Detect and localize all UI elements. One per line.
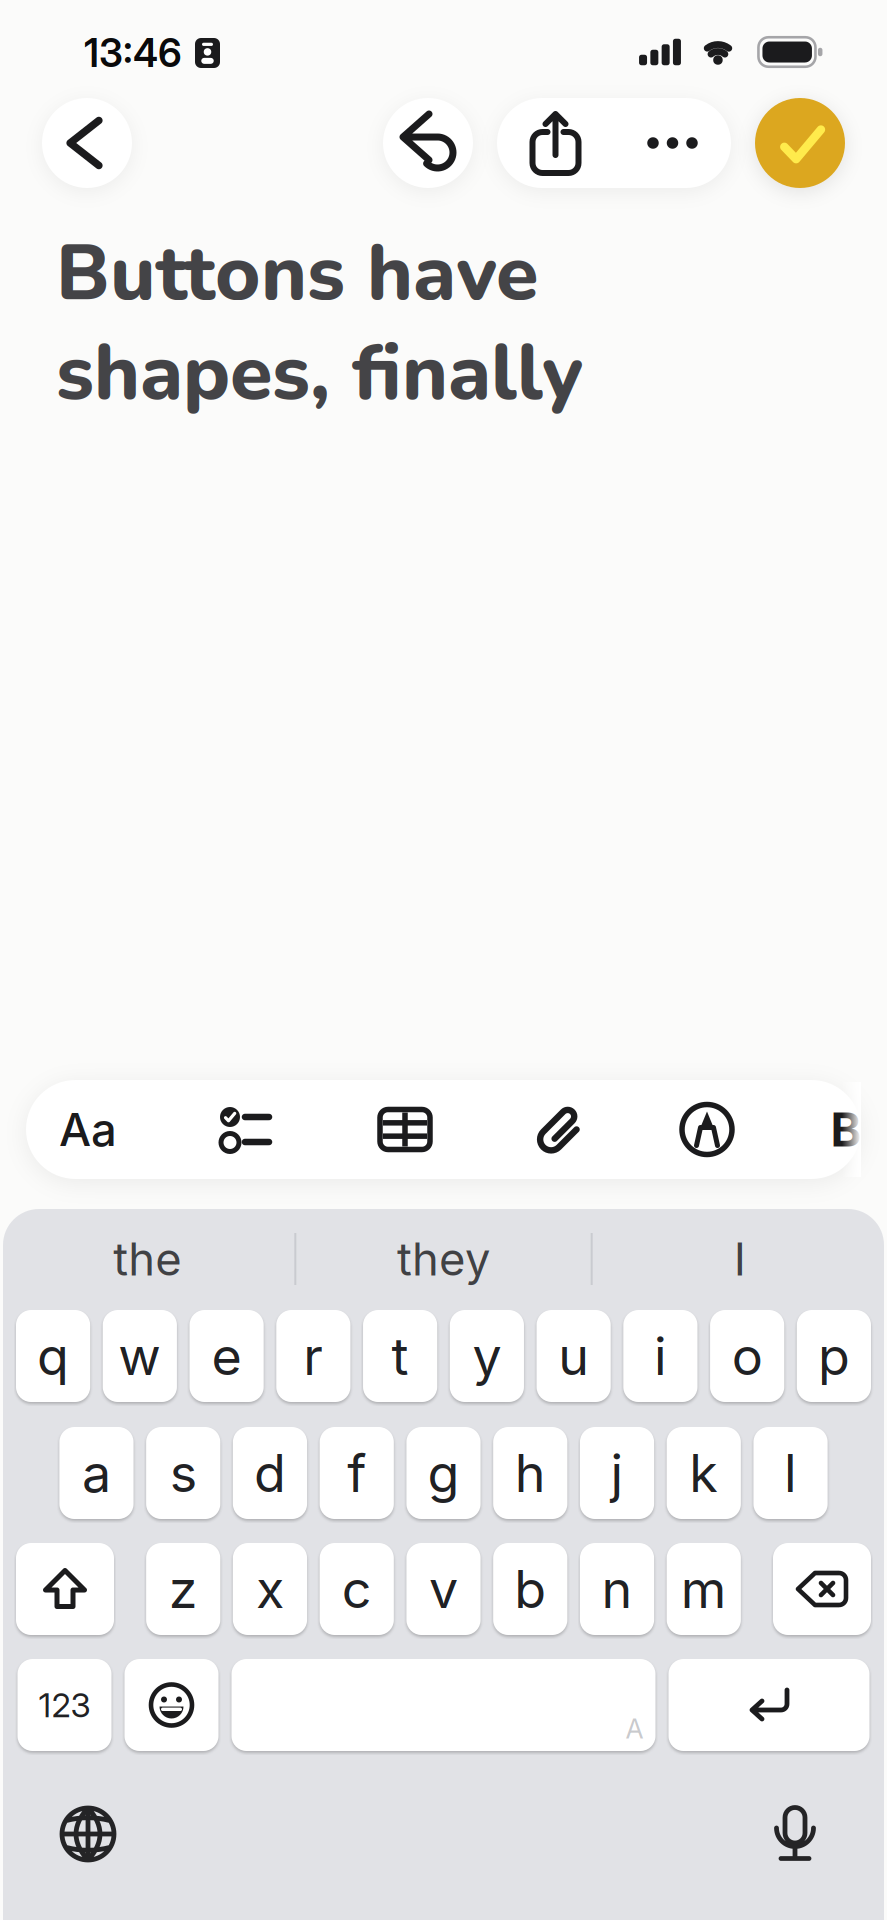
- staticText: w: [118, 1324, 161, 1387]
- button[interactable]: I: [593, 1232, 887, 1286]
- button[interactable]: u: [537, 1310, 611, 1402]
- staticText: l: [784, 1441, 797, 1504]
- button[interactable]: f: [320, 1427, 394, 1519]
- staticText: m: [681, 1557, 727, 1620]
- button[interactable]: b: [493, 1543, 567, 1635]
- staticText: Aa: [59, 1102, 117, 1157]
- button[interactable]: c: [320, 1543, 394, 1635]
- button[interactable]: g: [406, 1427, 481, 1519]
- staticText: a: [82, 1441, 111, 1504]
- button[interactable]: l: [753, 1427, 828, 1519]
- button[interactable]: o: [710, 1310, 784, 1402]
- staticText: d: [254, 1441, 286, 1504]
- staticText: k: [689, 1441, 718, 1504]
- button[interactable]: Return: [668, 1659, 869, 1751]
- button[interactable]: Next keyboard: [59, 1805, 117, 1863]
- button[interactable]: w: [103, 1310, 177, 1402]
- button[interactable]: Text format: [33, 1080, 143, 1179]
- staticText: q: [37, 1324, 69, 1387]
- staticText: the: [113, 1232, 181, 1286]
- staticText: v: [429, 1557, 458, 1620]
- button[interactable]: r: [276, 1310, 350, 1402]
- button[interactable]: Dictation: [773, 1805, 817, 1863]
- button[interactable]: Checklist: [193, 1080, 299, 1179]
- staticText: they: [397, 1232, 490, 1286]
- staticText: s: [170, 1441, 197, 1504]
- button[interactable]: n: [580, 1543, 654, 1635]
- button[interactable]: Share: [497, 98, 614, 188]
- staticText: h: [515, 1441, 546, 1504]
- button[interactable]: m: [667, 1543, 741, 1635]
- button[interactable]: Done: [755, 98, 845, 188]
- button[interactable]: y: [450, 1310, 524, 1402]
- staticText: Buttons have: [56, 221, 538, 326]
- staticText: u: [558, 1324, 589, 1387]
- button[interactable]: d: [233, 1427, 307, 1519]
- button[interactable]: t: [363, 1310, 437, 1402]
- staticText: y: [472, 1324, 501, 1387]
- button[interactable]: j: [580, 1427, 654, 1519]
- staticText: e: [212, 1324, 242, 1387]
- staticText: i: [654, 1324, 667, 1387]
- button[interactable]: Space: [231, 1659, 655, 1751]
- staticText: x: [256, 1557, 284, 1620]
- button[interactable]: k: [667, 1427, 741, 1519]
- staticText: g: [427, 1441, 459, 1504]
- staticText: f: [347, 1441, 366, 1504]
- staticText: j: [610, 1441, 623, 1504]
- staticText: B: [830, 1101, 861, 1158]
- button[interactable]: h: [493, 1427, 567, 1519]
- button[interactable]: Table: [351, 1080, 459, 1179]
- button[interactable]: Back: [42, 98, 132, 188]
- button[interactable]: Undo: [383, 98, 473, 188]
- staticText: A: [625, 1713, 643, 1745]
- button[interactable]: they: [296, 1232, 591, 1286]
- button[interactable]: p: [797, 1310, 871, 1402]
- button[interactable]: Bold: [816, 1080, 876, 1179]
- button[interactable]: Sketch: [655, 1080, 759, 1179]
- button[interactable]: 123: [17, 1659, 111, 1751]
- button[interactable]: q: [16, 1310, 90, 1402]
- staticText: r: [303, 1324, 323, 1387]
- staticText: p: [818, 1324, 850, 1387]
- button[interactable]: Emoji: [124, 1659, 218, 1751]
- staticText: c: [342, 1557, 372, 1620]
- button[interactable]: Attach file: [509, 1080, 613, 1179]
- staticText: t: [392, 1324, 409, 1387]
- staticText: n: [601, 1557, 632, 1620]
- button[interactable]: e: [189, 1310, 264, 1402]
- button[interactable]: Shift: [16, 1543, 114, 1635]
- staticText: b: [514, 1557, 546, 1620]
- staticText: 123: [38, 1685, 90, 1725]
- button[interactable]: i: [623, 1310, 697, 1402]
- button[interactable]: v: [406, 1543, 481, 1635]
- button[interactable]: x: [233, 1543, 307, 1635]
- button[interactable]: z: [146, 1543, 220, 1635]
- button[interactable]: More: [614, 98, 731, 188]
- button[interactable]: Delete: [773, 1543, 871, 1635]
- button[interactable]: a: [59, 1427, 134, 1519]
- staticText: shapes, finally: [56, 320, 583, 426]
- staticText: 13:46: [84, 30, 182, 76]
- staticText: o: [732, 1324, 763, 1387]
- staticText: z: [169, 1557, 198, 1620]
- staticText: I: [734, 1232, 746, 1286]
- button[interactable]: s: [146, 1427, 220, 1519]
- button[interactable]: the: [0, 1232, 294, 1286]
